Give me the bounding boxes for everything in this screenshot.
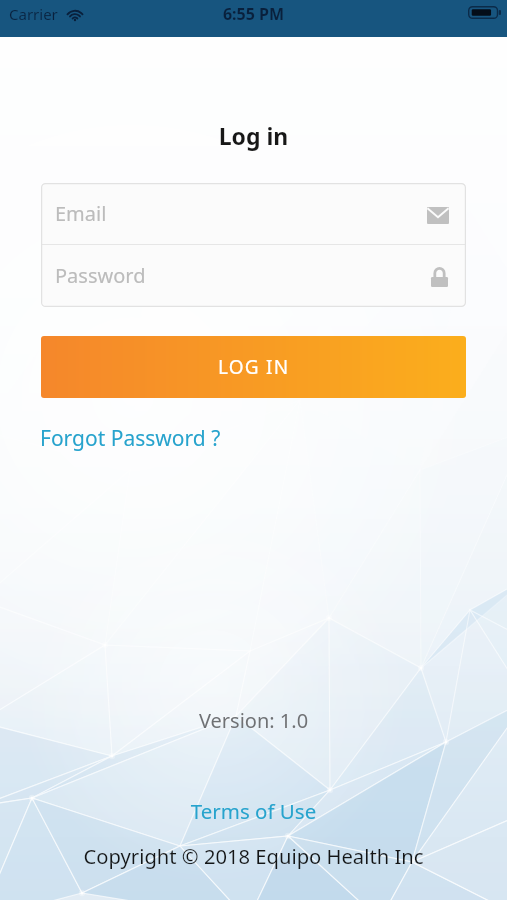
staticText: Copyright © 2018 Equipo Health Inc bbox=[0, 842, 507, 870]
other: Password bbox=[431, 268, 448, 287]
staticText: Email bbox=[55, 200, 107, 227]
button[interactable]: Forgot Password ? bbox=[40, 424, 221, 453]
button[interactable]: LOG IN bbox=[41, 336, 466, 398]
staticText: Carrier bbox=[9, 4, 58, 24]
button[interactable]: Email bbox=[41, 183, 466, 244]
other: Battery bbox=[468, 6, 501, 19]
other: Email bbox=[427, 207, 449, 224]
staticText: Password bbox=[55, 262, 146, 289]
staticText: Version: 1.0 bbox=[0, 707, 507, 734]
staticText: Forgot Password ? bbox=[40, 424, 221, 453]
staticText: Log in bbox=[0, 120, 507, 151]
button[interactable]: Password bbox=[41, 245, 466, 306]
button[interactable]: Terms of Use bbox=[0, 797, 507, 825]
staticText: 6:55 PM bbox=[0, 3, 507, 25]
staticText: LOG IN bbox=[218, 354, 290, 380]
